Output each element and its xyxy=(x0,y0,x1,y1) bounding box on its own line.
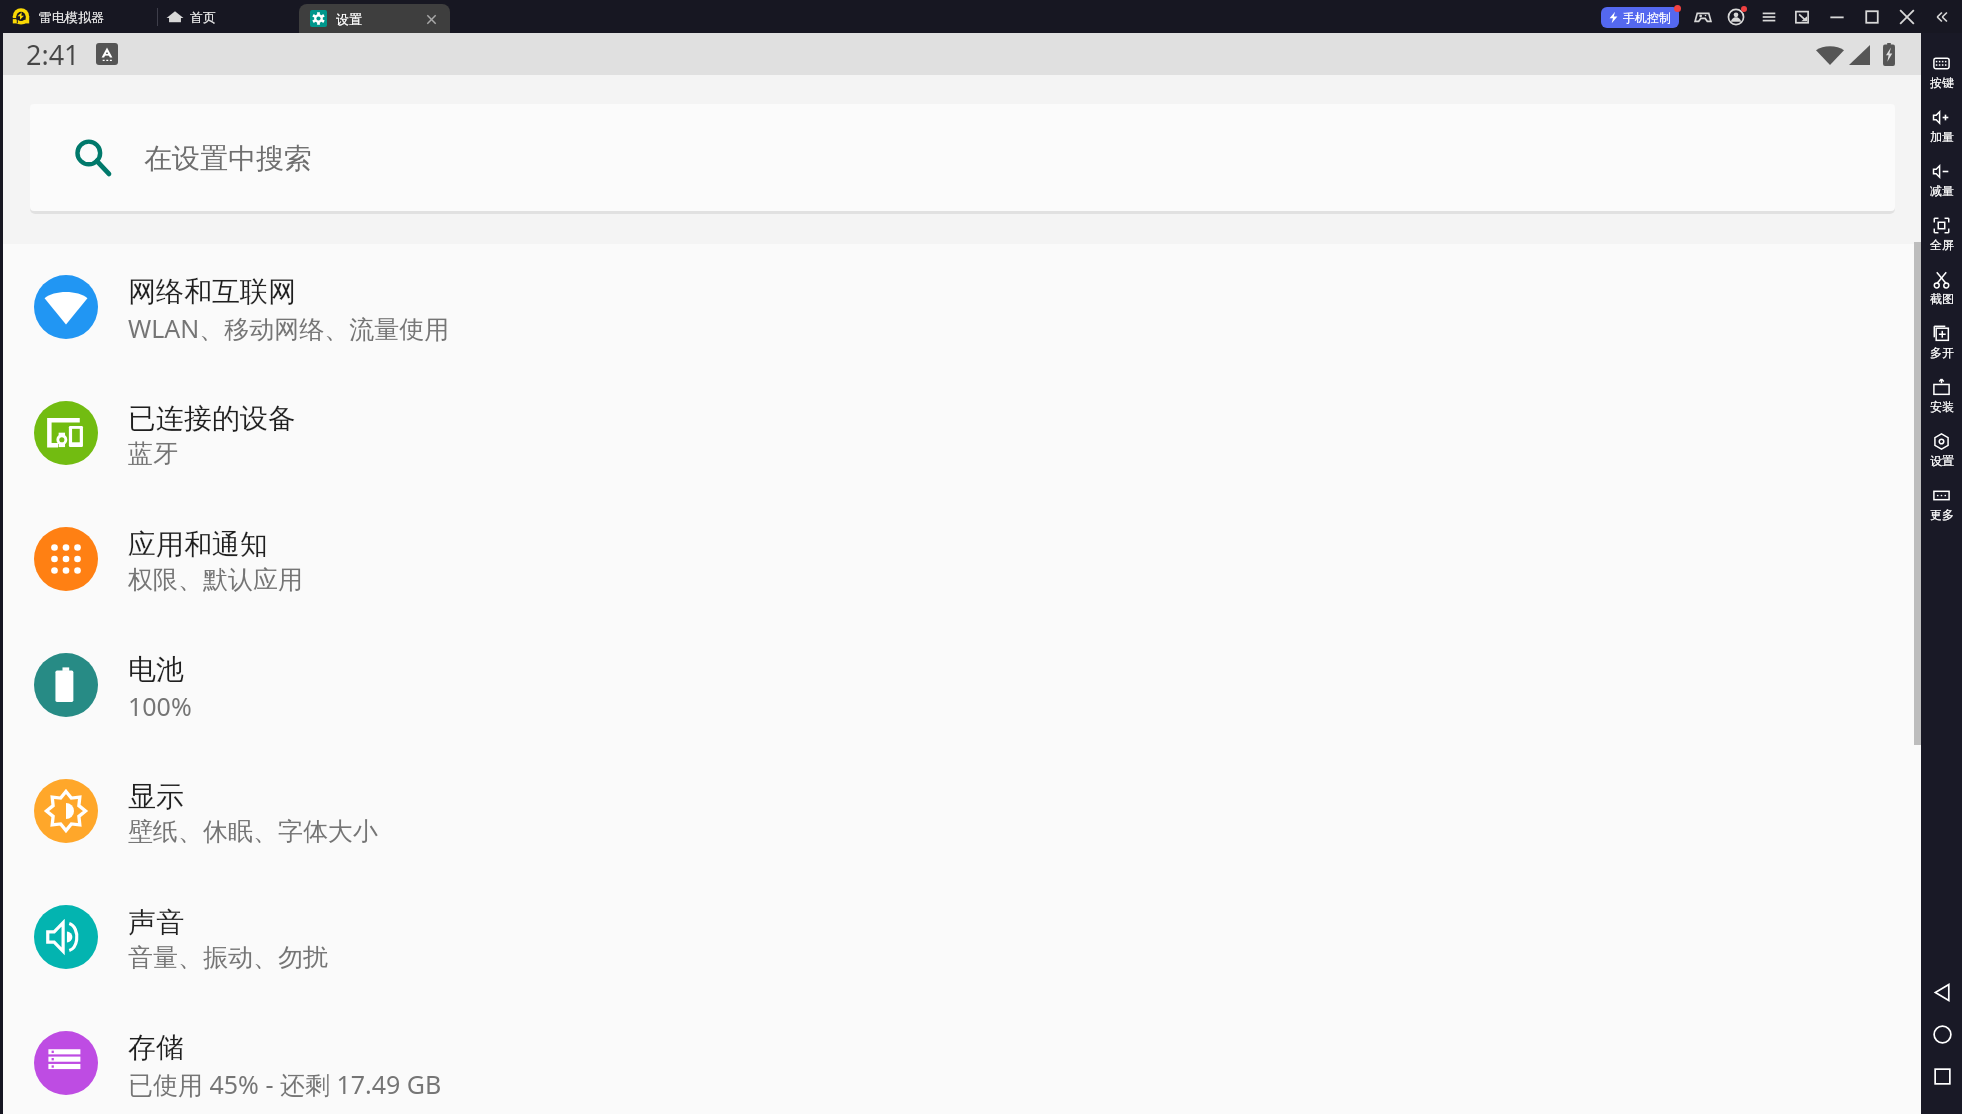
button[interactable]: 首页 xyxy=(162,4,220,30)
staticText: 蓝牙 xyxy=(128,438,178,469)
button[interactable]: Home xyxy=(1928,1020,1956,1048)
button[interactable]: 截图 xyxy=(1921,261,1962,315)
staticText: 设置 xyxy=(336,11,362,27)
button[interactable]: 设置 xyxy=(1921,423,1962,477)
button[interactable]: Restore xyxy=(1791,6,1813,28)
staticText: 安装 xyxy=(1930,399,1954,414)
button[interactable]: 减量 xyxy=(1921,153,1962,207)
staticText: 电池 xyxy=(128,652,184,687)
staticText: WLAN、移动网络、流量使用 xyxy=(128,311,450,345)
button[interactable]: 多开 xyxy=(1921,315,1962,369)
staticText: 按键 xyxy=(1930,75,1954,90)
button[interactable]: 应用和通知 xyxy=(3,496,1921,622)
staticText: 已连接的设备 xyxy=(128,401,296,436)
staticText: 更多 xyxy=(1930,507,1954,522)
button[interactable]: 全屏 xyxy=(1921,207,1962,261)
button[interactable]: 更多 xyxy=(1921,477,1962,531)
staticText: 雷电模拟器 xyxy=(39,9,104,25)
staticText: 显示 xyxy=(128,779,184,814)
button[interactable]: 网络和互联网 xyxy=(3,244,1921,370)
staticText: 设置 xyxy=(1930,453,1954,468)
button[interactable]: 加量 xyxy=(1921,99,1962,153)
staticText: 多开 xyxy=(1930,345,1954,360)
button[interactable]: 设置 xyxy=(299,4,450,33)
button[interactable]: 手机控制 xyxy=(1601,7,1679,28)
staticText: 100% xyxy=(128,689,192,723)
staticText: 存储 xyxy=(128,1030,184,1065)
staticText: 音量、振动、勿扰 xyxy=(128,942,328,973)
staticText: 声音 xyxy=(128,905,184,940)
button[interactable]: Games xyxy=(1692,6,1714,28)
button[interactable]: Menu xyxy=(1758,6,1780,28)
button[interactable]: 安装 xyxy=(1921,369,1962,423)
button[interactable]: 已连接的设备 xyxy=(3,370,1921,496)
button[interactable]: 声音 xyxy=(3,874,1921,1000)
button[interactable]: Recents xyxy=(1928,1062,1956,1090)
button[interactable]: Close tab xyxy=(422,10,440,28)
staticText: 权限、默认应用 xyxy=(128,564,303,595)
staticText: 壁纸、休眠、字体大小 xyxy=(128,816,378,847)
button[interactable]: Minimize xyxy=(1826,6,1848,28)
button[interactable]: 存储 xyxy=(3,1000,1921,1114)
staticText: 2:41 xyxy=(26,36,80,73)
button[interactable]: 按键 xyxy=(1921,45,1962,99)
staticText: 减量 xyxy=(1930,183,1954,198)
button[interactable]: 在设置中搜索 xyxy=(30,104,1895,211)
button[interactable]: Close xyxy=(1896,6,1918,28)
staticText: 网络和互联网 xyxy=(128,274,296,309)
staticText: 已使用 45% - 还剩 17.49 GB xyxy=(128,1067,442,1101)
button[interactable]: Maximize xyxy=(1861,6,1883,28)
staticText: 加量 xyxy=(1930,129,1954,144)
button[interactable]: 显示 xyxy=(3,748,1921,874)
staticText: 手机控制 xyxy=(1623,10,1671,25)
staticText: 全屏 xyxy=(1930,237,1954,252)
staticText: 首页 xyxy=(190,9,216,25)
button[interactable]: Back xyxy=(1928,978,1956,1006)
staticText: 应用和通知 xyxy=(128,527,268,562)
button[interactable]: 电池 xyxy=(3,622,1921,748)
button[interactable]: Collapse xyxy=(1930,6,1952,28)
button[interactable]: Account xyxy=(1725,6,1747,28)
staticText: 在设置中搜索 xyxy=(144,141,312,176)
staticText: 截图 xyxy=(1930,291,1954,306)
